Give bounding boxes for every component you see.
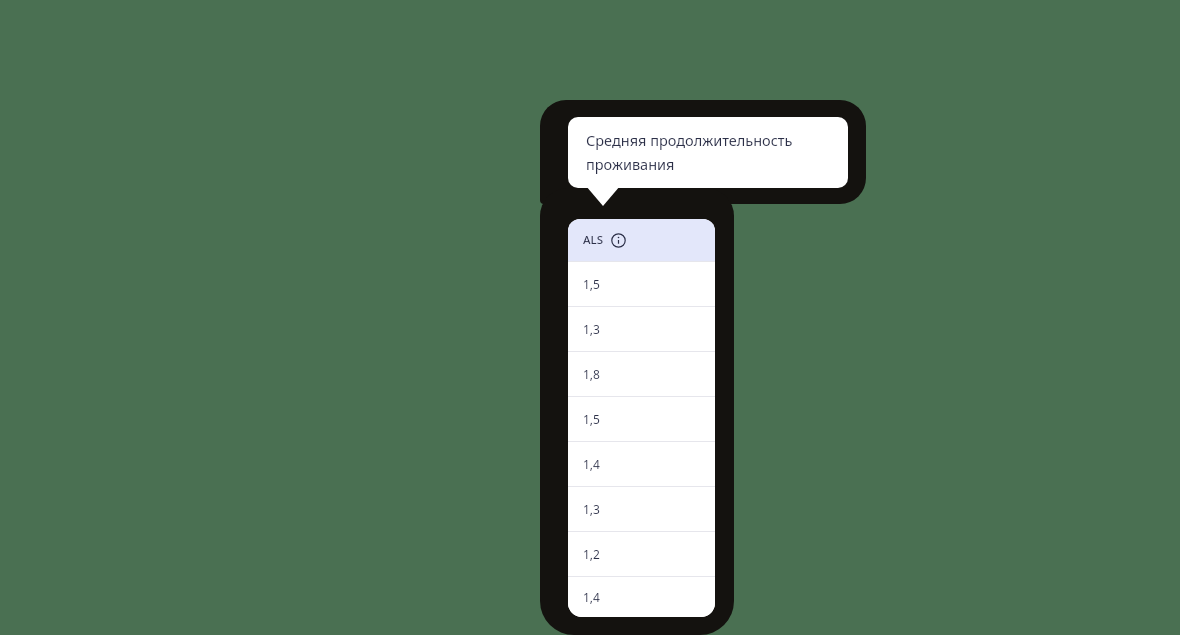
staticText: 1,8 — [583, 366, 600, 382]
button[interactable]: 1,3 — [568, 307, 715, 351]
button[interactable]: 1,5 — [568, 397, 715, 441]
button[interactable]: ALS — [568, 219, 715, 261]
button[interactable]: 1,8 — [568, 352, 715, 396]
button[interactable]: 1,3 — [568, 487, 715, 531]
staticText: ALS — [583, 232, 603, 248]
button[interactable]: 1,4 — [568, 442, 715, 486]
staticText: 1,5 — [583, 411, 600, 427]
staticText: Средняя продолжительность проживания — [586, 130, 793, 174]
staticText: 1,2 — [583, 546, 600, 562]
button[interactable]: 1,5 — [568, 262, 715, 306]
staticText: 1,5 — [583, 276, 600, 292]
staticText: 1,4 — [583, 589, 600, 605]
button[interactable]: 1,2 — [568, 532, 715, 576]
staticText: 1,3 — [583, 321, 600, 337]
button[interactable]: 1,4 — [568, 577, 715, 617]
button[interactable]: Информация — [610, 232, 626, 248]
staticText: 1,4 — [583, 456, 600, 472]
button[interactable]: Средняя продолжительность проживания — [568, 117, 848, 188]
staticText: 1,3 — [583, 501, 600, 517]
